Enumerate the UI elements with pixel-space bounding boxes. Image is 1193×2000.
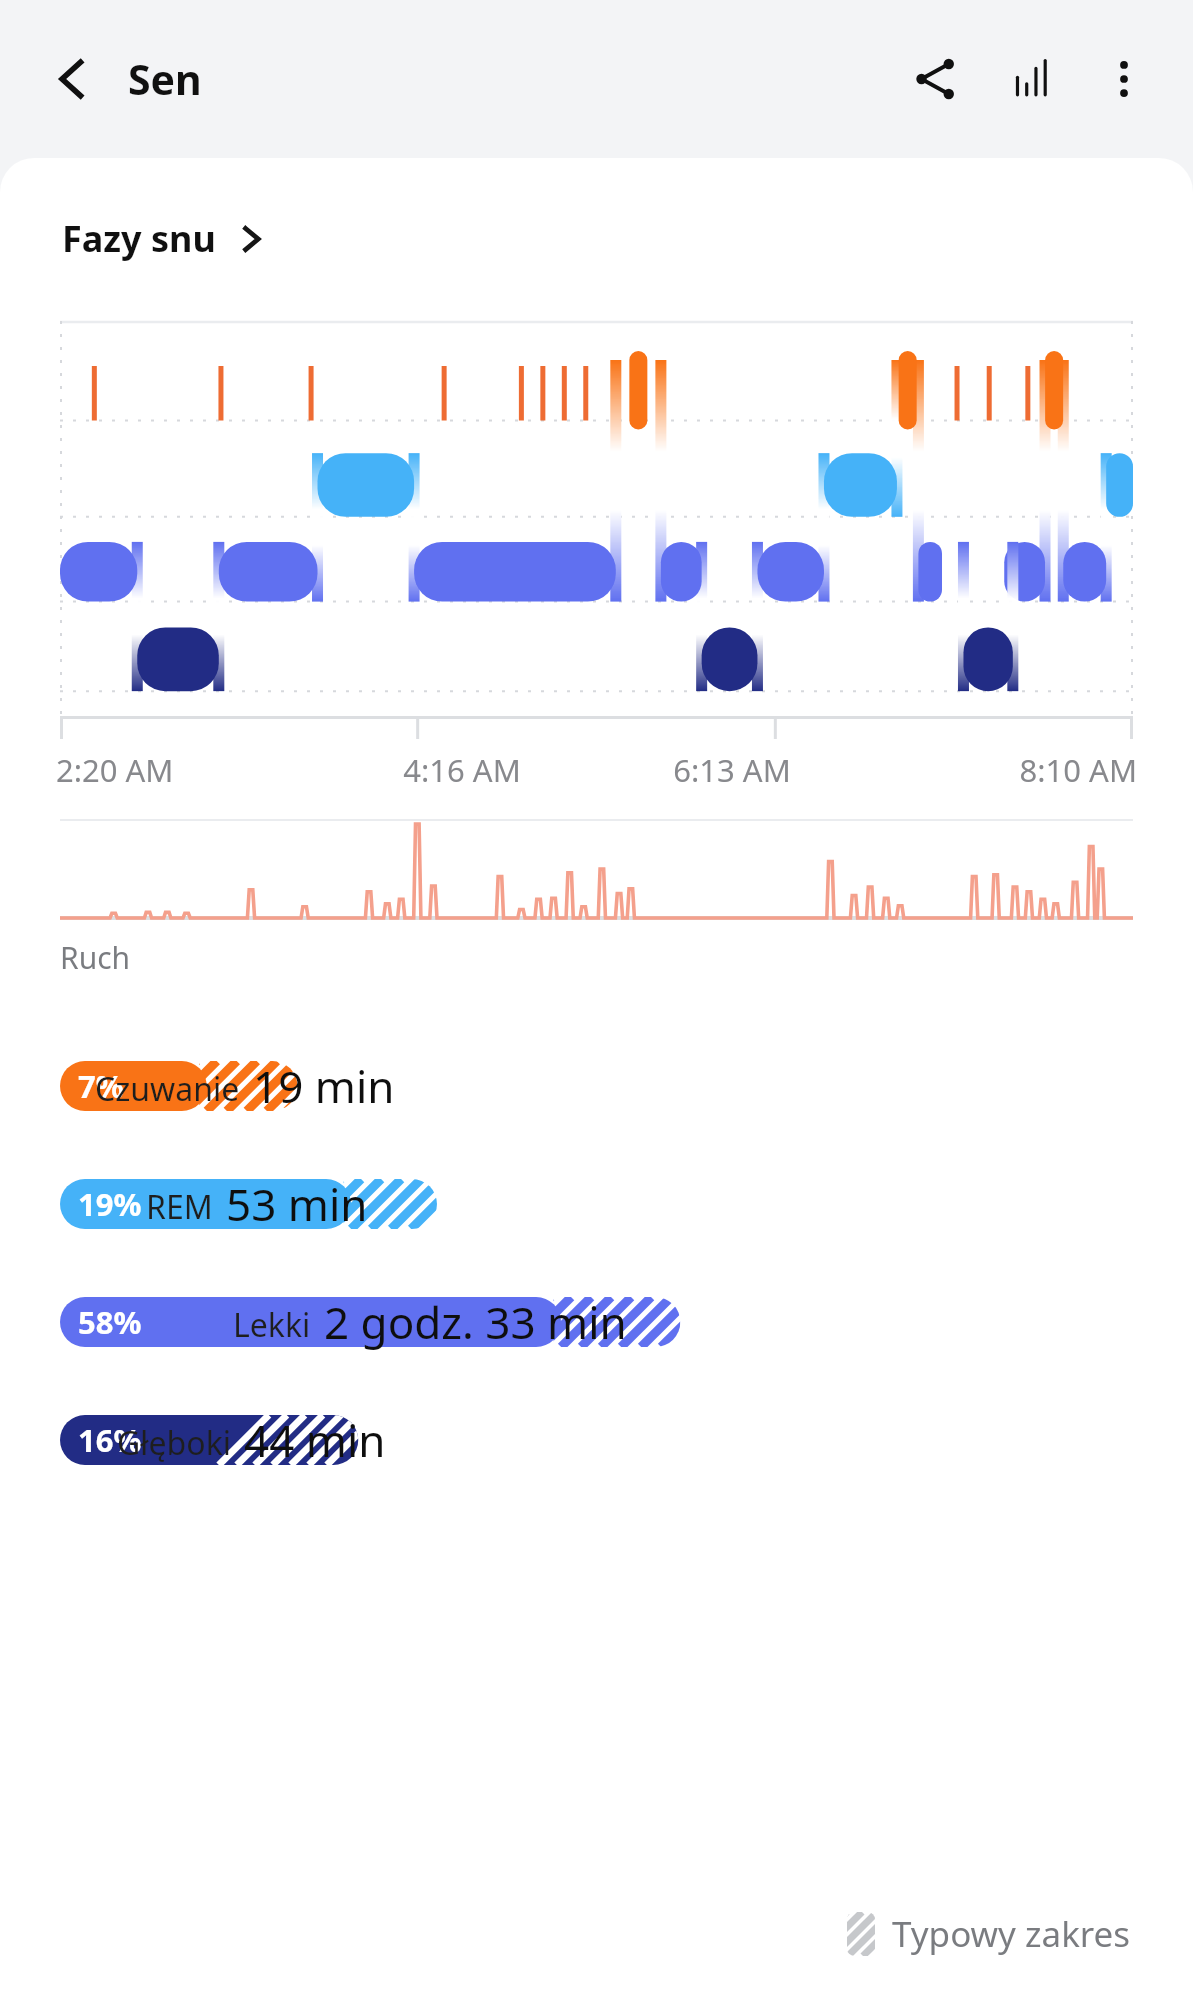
staticText: 19% <box>78 1183 142 1225</box>
button[interactable]: Back <box>40 46 106 112</box>
staticText: REM <box>146 1185 213 1229</box>
staticText: 7% <box>78 1065 124 1107</box>
button[interactable]: 16% <box>0 1408 1193 1472</box>
button[interactable]: 19% <box>0 1172 1193 1236</box>
button[interactable]: Fazy snu <box>62 214 266 263</box>
staticText: Ruch <box>60 937 131 978</box>
staticText: Czuwanie <box>95 1067 240 1111</box>
staticText: 4:16 AM <box>327 749 597 791</box>
staticText: Głęboki <box>117 1421 231 1465</box>
staticText: Lekki <box>233 1303 311 1347</box>
staticText: Fazy snu <box>62 214 216 263</box>
staticText: Typowy zakres <box>892 1910 1131 1958</box>
staticText: 19 min <box>253 1056 395 1116</box>
staticText: 58% <box>78 1301 142 1343</box>
button[interactable]: Typowy zakres <box>847 1910 1131 1958</box>
button[interactable]: Trends <box>997 44 1067 114</box>
staticText: 8:10 AM <box>867 749 1137 791</box>
staticText: 16% <box>78 1419 142 1461</box>
staticText: 2 godz. 33 min <box>324 1292 627 1352</box>
button[interactable]: More options <box>1089 44 1159 114</box>
staticText: 2:20 AM <box>56 749 327 791</box>
staticText: 6:13 AM <box>597 749 867 791</box>
button[interactable]: Share <box>901 44 971 114</box>
staticText: Sen <box>128 51 202 107</box>
staticText: 53 min <box>226 1174 368 1234</box>
button[interactable]: 58% <box>0 1290 1193 1354</box>
button[interactable]: 7% <box>0 1054 1193 1118</box>
staticText: 44 min <box>244 1410 386 1470</box>
